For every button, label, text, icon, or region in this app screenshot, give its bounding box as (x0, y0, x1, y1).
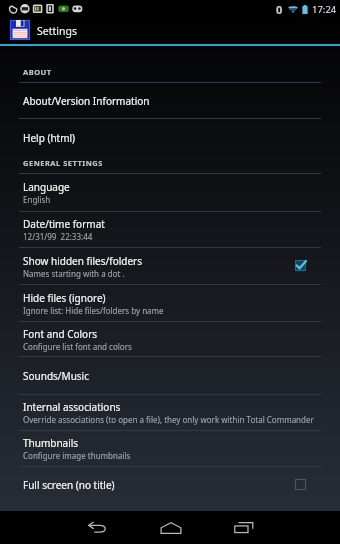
staticText: Font and Colors (23, 327, 98, 341)
staticText: Hide files (ignore) (23, 291, 106, 305)
button[interactable]: Thumbnails (0, 430, 340, 466)
staticText: About/Version Information (23, 94, 150, 108)
staticText: 12/31/99 22:33:44 (23, 231, 93, 242)
staticText: 17:24 (312, 3, 337, 16)
button[interactable]: Recent apps (221, 511, 266, 544)
staticText: Sounds/Music (23, 369, 89, 383)
button[interactable]: Date/time format (0, 211, 340, 247)
staticText: Names starting with a dot . (23, 268, 125, 279)
staticText: Override associations (to open a file), … (23, 414, 314, 425)
button[interactable]: Show hidden files/folders (0, 247, 340, 284)
staticText: Thumbnails (23, 436, 79, 450)
button[interactable]: Language (0, 173, 340, 211)
staticText: Date/time format (23, 217, 105, 231)
button[interactable]: Home (148, 511, 193, 544)
button[interactable]: Help (html) (0, 118, 340, 155)
button[interactable]: Sounds/Music (0, 356, 340, 394)
staticText: Language (23, 180, 70, 194)
staticText: 0 (276, 2, 283, 17)
staticText: Settings (37, 24, 77, 38)
staticText: ABOUT (23, 67, 52, 77)
button[interactable]: Font and Colors (0, 321, 340, 356)
staticText: Internal associations (23, 400, 121, 414)
staticText: GENERAL SETTINGS (23, 158, 103, 168)
button[interactable]: About/Version Information (0, 82, 340, 118)
staticText: Configure list font and colors (23, 341, 132, 352)
staticText: Configure image thumbnails (23, 450, 131, 461)
button[interactable]: Full screen (no title) (0, 466, 340, 502)
button[interactable]: Back (75, 511, 120, 544)
button[interactable]: Internal associations (0, 394, 340, 430)
button[interactable]: Hide files (ignore) (0, 284, 340, 321)
staticText: Ignore list: Hide files/folders by name (23, 305, 164, 316)
staticText: English (23, 194, 51, 205)
staticText: Full screen (no title) (23, 478, 115, 492)
staticText: Show hidden files/folders (23, 254, 142, 268)
staticText: Help (html) (23, 131, 76, 145)
